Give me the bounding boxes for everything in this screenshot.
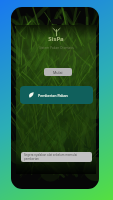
button[interactable]: Segera nyalakan alat sebelum memulai pem…: [21, 152, 92, 162]
button[interactable]: Mulai: [44, 68, 72, 76]
button[interactable]: Pemberian Pakan: [20, 86, 93, 104]
staticText: SisPa: [48, 35, 64, 43]
staticText: Sistem Pakan Otomatis: [39, 46, 74, 50]
staticText: Pemberian Pakan: [38, 93, 68, 98]
staticText: Segera nyalakan alat sebelum memulai pem…: [24, 153, 89, 161]
staticText: Mulai: [53, 70, 63, 75]
